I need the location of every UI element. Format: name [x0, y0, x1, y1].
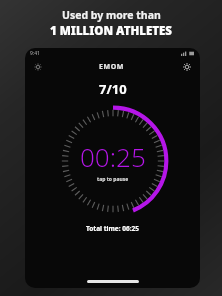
staticText: 1 MILLION ATHLETES [50, 23, 173, 39]
button[interactable]: Settings [174, 59, 200, 75]
button[interactable]: Tap to pause timer [57, 105, 169, 217]
staticText: 9:41 [30, 50, 40, 57]
staticText: Used by more than [62, 8, 161, 22]
staticText: tap to pause [97, 176, 129, 183]
staticText: 7/10 [99, 80, 127, 98]
staticText: 00:25 [80, 139, 146, 174]
staticText: Total time: 06:25 [86, 224, 139, 233]
button[interactable]: Sound settings [25, 59, 51, 75]
staticText: EMOM [99, 62, 125, 72]
